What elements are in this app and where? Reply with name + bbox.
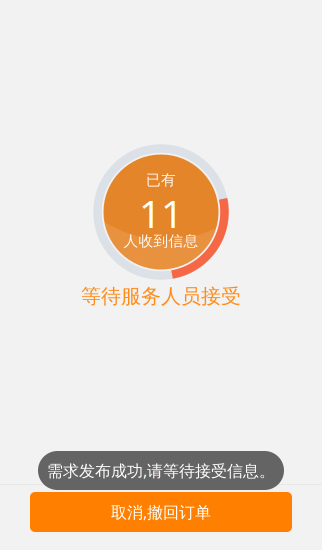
- staticText: 已有: [146, 171, 176, 189]
- staticText: 11: [139, 187, 183, 239]
- staticText: 取消,撤回订单: [111, 501, 211, 523]
- staticText: 人收到信息: [123, 232, 198, 250]
- staticText: 等待服务人员接受: [81, 284, 241, 309]
- staticText: 需求发布成功,请等待接受信息。: [47, 460, 275, 481]
- button[interactable]: 取消,撤回订单: [30, 492, 292, 532]
